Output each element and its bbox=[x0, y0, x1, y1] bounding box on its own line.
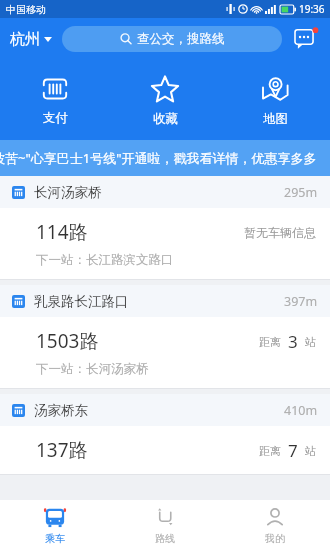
staticText: 站 bbox=[305, 335, 316, 349]
button[interactable]: 路线 bbox=[110, 500, 220, 550]
staticText: 汤家桥东 bbox=[34, 402, 284, 419]
staticText: 114路 bbox=[36, 219, 244, 245]
staticText: 137路 bbox=[36, 437, 259, 463]
staticText: 杭州 bbox=[10, 30, 40, 49]
button[interactable]: 地图 bbox=[220, 70, 330, 131]
button[interactable]: 波苦~"心享巴士1号线"开通啦，戳我看详情，优惠享多多 bbox=[0, 140, 330, 176]
staticText: 查公交，搜路线 bbox=[137, 31, 225, 47]
button[interactable]: 乘车 bbox=[0, 500, 110, 550]
button[interactable]: 查公交，搜路线 bbox=[62, 26, 282, 52]
button[interactable]: 杭州 bbox=[8, 26, 54, 53]
staticText: 7 bbox=[288, 439, 298, 462]
button[interactable]: 乳泉路长江路口 bbox=[0, 285, 330, 389]
staticText: 支付 bbox=[43, 110, 68, 126]
staticText: 下一站：长河汤家桥 bbox=[36, 361, 149, 377]
staticText: 乳泉路长江路口 bbox=[34, 293, 284, 310]
staticText: 我的 bbox=[265, 532, 285, 545]
staticText: 暂无车辆信息 bbox=[244, 225, 316, 240]
button[interactable]: 汤家桥东 bbox=[0, 394, 330, 475]
button[interactable]: Messages bbox=[290, 23, 322, 55]
staticText: 距离 bbox=[259, 444, 281, 458]
staticText: 收藏 bbox=[153, 111, 178, 127]
staticText: 295m bbox=[284, 184, 318, 201]
staticText: 19:36 bbox=[299, 2, 325, 16]
staticText: 乘车 bbox=[45, 532, 65, 545]
staticText: 397m bbox=[284, 293, 318, 310]
staticText: 距离 bbox=[259, 335, 281, 349]
staticText: 站 bbox=[305, 444, 316, 458]
button[interactable]: 收藏 bbox=[110, 70, 220, 131]
button[interactable]: 长河汤家桥 bbox=[0, 176, 330, 280]
staticText: 地图 bbox=[263, 111, 288, 127]
staticText: 410m bbox=[284, 402, 318, 419]
staticText: 3 bbox=[288, 330, 298, 353]
staticText: 中国移动 bbox=[6, 3, 46, 16]
staticText: 1503路 bbox=[36, 328, 259, 354]
staticText: 路线 bbox=[155, 532, 175, 545]
staticText: 波苦~"心享巴士1号线"开通啦，戳我看详情，优惠享多多 bbox=[0, 149, 317, 167]
button[interactable]: 我的 bbox=[220, 500, 330, 550]
staticText: 下一站：长江路滨文路口 bbox=[36, 252, 174, 268]
staticText: 长河汤家桥 bbox=[34, 184, 284, 201]
button[interactable]: 支付 bbox=[0, 71, 110, 130]
